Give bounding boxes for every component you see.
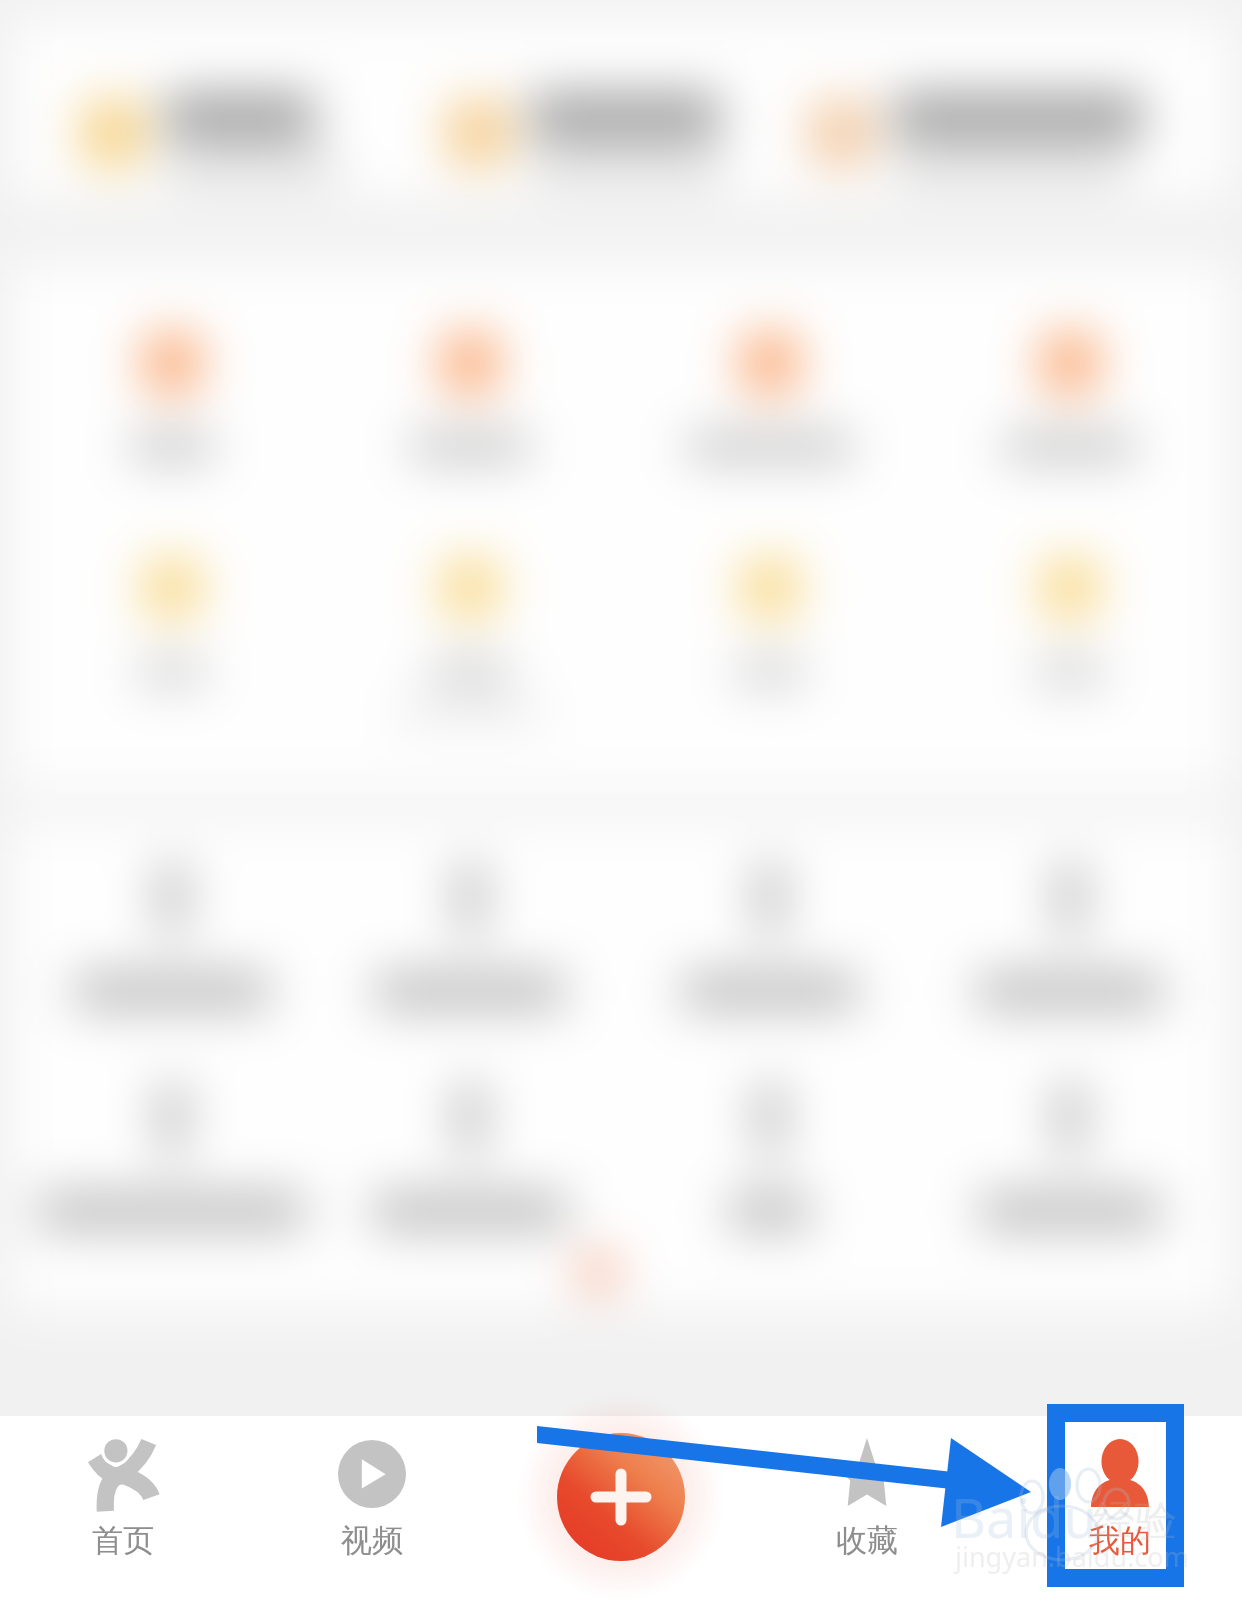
staticText: 经验 [1093, 1495, 1177, 1548]
staticText: 我的 [1089, 1521, 1151, 1560]
button[interactable]: 收藏 [757, 1420, 977, 1592]
staticText: Baidu [951, 1480, 1097, 1554]
button[interactable]: 首页 [13, 1420, 233, 1592]
button[interactable]: 视频 [262, 1420, 482, 1592]
staticText: jingyan.baidu.com [955, 1538, 1189, 1575]
staticText: 视频 [341, 1521, 403, 1560]
button[interactable]: 我的 [1010, 1420, 1230, 1592]
staticText: 收藏 [836, 1521, 898, 1560]
button[interactable]: Add [557, 1433, 685, 1561]
staticText: 首页 [92, 1521, 154, 1560]
